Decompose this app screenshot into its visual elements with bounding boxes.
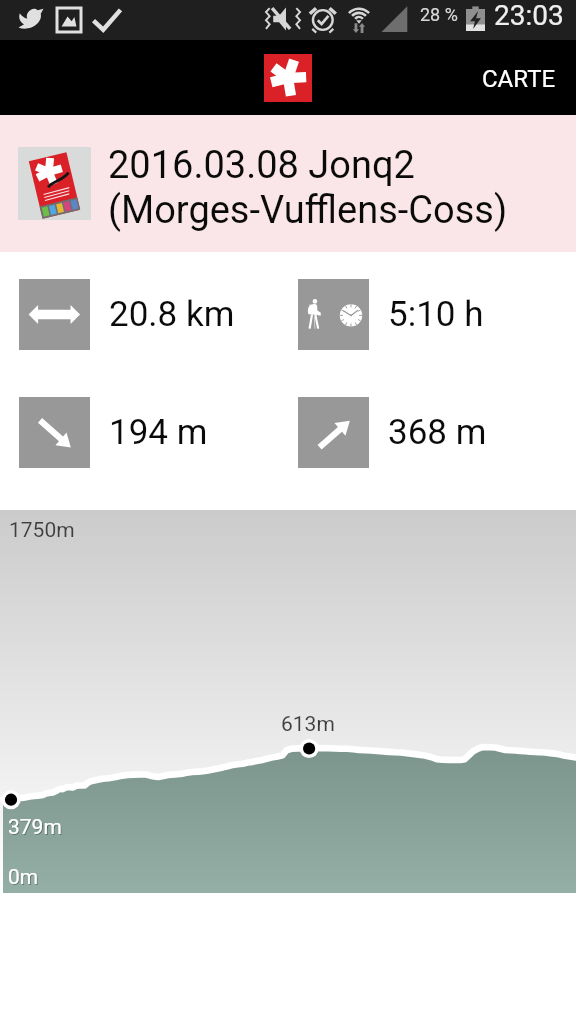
button[interactable]: 2016.03.08 Jonq2 <box>0 115 576 252</box>
other: Descent <box>19 397 90 468</box>
button[interactable]: CARTE <box>462 50 576 106</box>
other: Ascent <box>298 397 369 468</box>
other: Duration <box>298 279 369 350</box>
staticText: 379m <box>9 816 63 841</box>
staticText: 20.8 km <box>109 294 235 335</box>
button[interactable]: Descent <box>19 397 208 468</box>
staticText: 613m <box>281 712 335 737</box>
staticText: 5:10 h <box>388 294 484 335</box>
staticText: (Morges-Vufflens-Coss) <box>108 188 508 233</box>
staticText: 0m <box>8 865 39 890</box>
staticText: CARTE <box>482 65 556 93</box>
staticText: 368 m <box>388 412 487 453</box>
button[interactable]: 1750m <box>0 510 576 893</box>
staticText: 0m <box>9 866 40 891</box>
button[interactable]: SchweizMobil home <box>264 54 312 102</box>
staticText: 23:03 <box>494 0 564 32</box>
button[interactable]: Ascent <box>298 397 487 468</box>
staticText: 28 % <box>420 4 458 25</box>
staticText: 379m <box>8 815 62 840</box>
staticText: 1750m <box>9 518 75 543</box>
other: Distance <box>19 279 90 350</box>
button[interactable]: Duration <box>298 279 484 350</box>
staticText: 194 m <box>109 412 208 453</box>
button[interactable]: Distance <box>19 279 235 350</box>
staticText: 2016.03.08 Jonq2 <box>108 143 415 188</box>
